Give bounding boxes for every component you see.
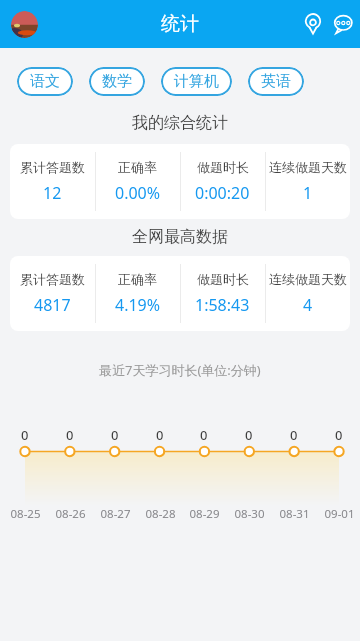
staticText: 统计 — [161, 12, 199, 36]
staticText: 我的综合统计 — [132, 113, 228, 133]
staticText: 4.19% — [115, 294, 161, 316]
button[interactable]: 累计答题数 — [10, 256, 350, 331]
staticText: 08-27 — [100, 506, 131, 522]
staticText: 4 — [303, 294, 313, 316]
button[interactable] — [330, 10, 358, 38]
button[interactable]: 计算机 — [161, 67, 232, 96]
staticText: 正确率 — [118, 159, 157, 175]
staticText: 12 — [43, 182, 62, 204]
staticText: 连续做题天数 — [269, 159, 347, 175]
staticText: 08-25 — [10, 506, 41, 522]
staticText: 全网最高数据 — [132, 227, 228, 247]
staticText: 0 — [245, 426, 253, 444]
staticText: 08-28 — [145, 506, 176, 522]
staticText: 1:58:43 — [195, 294, 250, 316]
staticText: 1 — [303, 182, 313, 204]
staticText: 累计答题数 — [20, 159, 85, 175]
button[interactable]: 英语 — [248, 67, 304, 96]
button[interactable]: 数学 — [89, 67, 145, 96]
staticText: 连续做题天数 — [269, 271, 347, 287]
staticText: 0:00:20 — [195, 182, 250, 204]
staticText: 0 — [66, 426, 74, 444]
staticText: 0 — [21, 426, 29, 444]
staticText: 0 — [290, 426, 298, 444]
staticText: 0 — [156, 426, 164, 444]
staticText: 0 — [335, 426, 343, 444]
staticText: 做题时长 — [197, 159, 249, 175]
button[interactable] — [300, 10, 328, 38]
staticText: 英语 — [261, 72, 291, 91]
staticText: 最近7天学习时长(单位:分钟) — [99, 361, 261, 379]
staticText: 08-30 — [234, 506, 265, 522]
button[interactable] — [11, 11, 38, 38]
staticText: 4817 — [34, 294, 71, 316]
staticText: 08-31 — [279, 506, 310, 522]
staticText: 做题时长 — [197, 271, 249, 287]
staticText: 累计答题数 — [20, 271, 85, 287]
button[interactable]: 语文 — [17, 67, 73, 96]
staticText: 0.00% — [115, 182, 161, 204]
staticText: 09-01 — [324, 506, 355, 522]
staticText: 08-26 — [55, 506, 86, 522]
staticText: 数学 — [102, 72, 132, 91]
button[interactable]: 累计答题数 — [10, 144, 350, 219]
staticText: 计算机 — [174, 72, 219, 91]
staticText: 0 — [111, 426, 119, 444]
staticText: 08-29 — [189, 506, 220, 522]
staticText: 正确率 — [118, 271, 157, 287]
staticText: 语文 — [30, 72, 60, 91]
staticText: 0 — [200, 426, 208, 444]
